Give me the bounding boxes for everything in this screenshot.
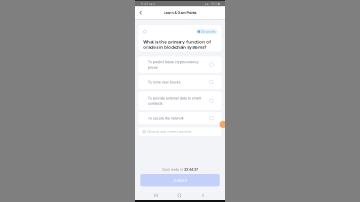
button[interactable]: Submit [140,174,220,186]
button[interactable]: To mine new blocks [138,75,221,89]
staticText: Learn & Gain Points [163,10,196,15]
staticText: 9:42 [141,2,148,5]
button[interactable]: To provide external data to smart [138,91,221,110]
button[interactable]: Help [220,121,227,128]
button[interactable]: To predict future cryptocurrency [138,56,221,73]
staticText: Choose one correct answer [147,130,191,134]
button[interactable]: Back [191,191,215,199]
staticText: 32:44:37 [184,167,198,172]
button[interactable]: To secure the network [138,112,221,124]
button[interactable]: Home [168,191,191,199]
staticText: prices [148,65,158,69]
staticText: ◂▴◂· [149,2,156,5]
staticText: 20 points [201,30,216,33]
staticText: contracts [148,101,163,106]
staticText: Submit [173,178,186,183]
button[interactable]: Recent apps [144,191,168,199]
staticText: ▴▴··50%▮ [205,2,220,5]
staticText: To provide external data to smart [148,96,201,100]
staticText: Quiz ends in [162,167,183,172]
staticText: What is the primary function of [143,39,211,44]
button[interactable]: Back [135,6,146,19]
staticText: To predict future cryptocurrency [148,60,199,64]
staticText: To mine new blocks [148,80,181,84]
staticText: oracles in blockchain systems? [143,45,206,50]
staticText: To secure the network [148,116,184,120]
